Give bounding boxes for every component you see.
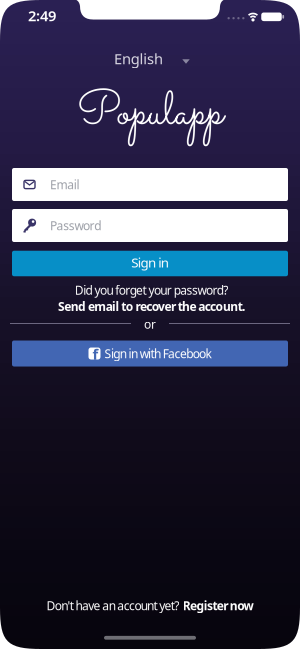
staticText: Register now (183, 597, 253, 613)
button[interactable]: Sign in (12, 251, 288, 276)
staticText: Don't have an account yet? (46, 597, 179, 613)
staticText: f (92, 344, 98, 364)
staticText: 2:49 (28, 6, 56, 25)
button[interactable]: Password (12, 209, 288, 242)
staticText: Send email to recover the account. (58, 298, 245, 314)
staticText: Populapp (77, 80, 223, 148)
button[interactable]: Don't have an account yet? (46, 597, 254, 613)
button[interactable]: Email (12, 168, 288, 201)
staticText: Email (50, 176, 79, 192)
staticText: Sign in with Facebook (104, 345, 211, 361)
staticText: Password (50, 217, 101, 233)
staticText: Sign in (131, 253, 169, 271)
button[interactable]: f (12, 340, 288, 366)
button[interactable]: Did you forget your password? (58, 282, 245, 314)
staticText: Did you forget your password? (75, 282, 228, 298)
button[interactable]: Language: English (90, 45, 210, 71)
staticText: English (114, 49, 163, 68)
staticText: or (144, 316, 156, 332)
